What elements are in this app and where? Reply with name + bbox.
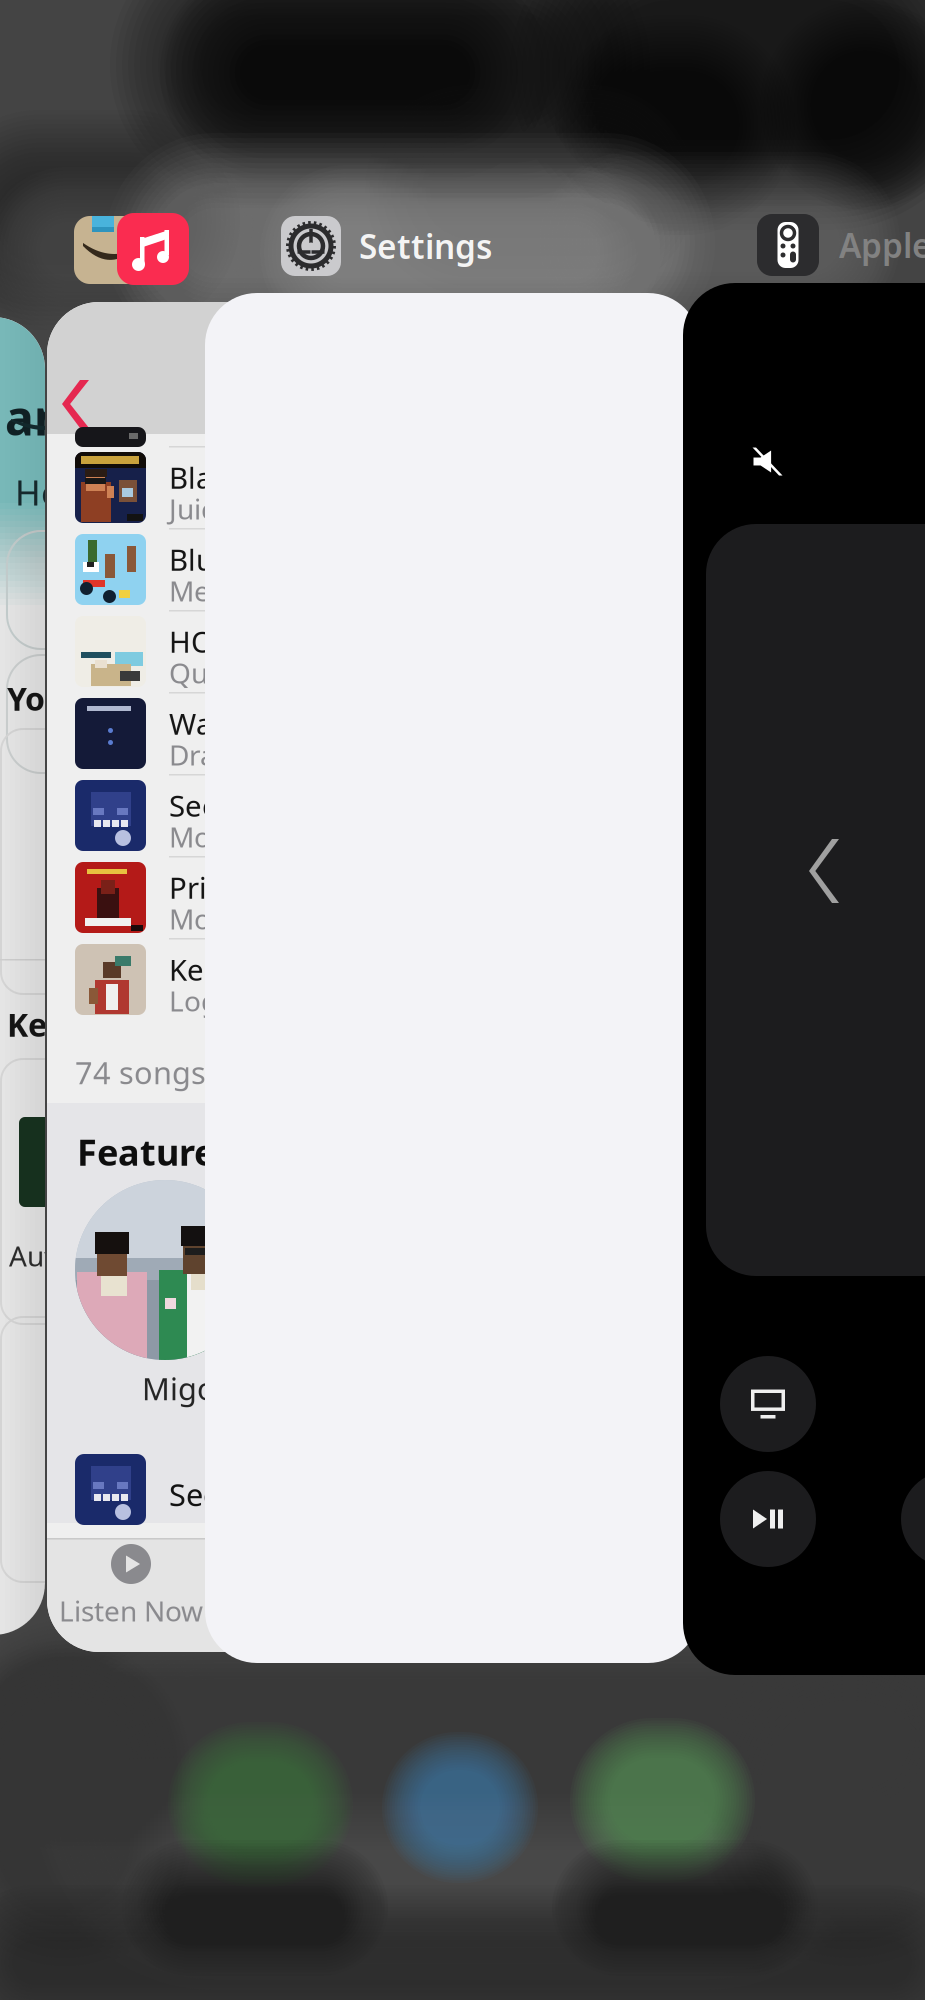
staticText: HOT <box>169 622 229 661</box>
button[interactable]: Back <box>793 823 855 919</box>
staticText: See <box>169 1474 220 1515</box>
button[interactable]: Apple TV Remote <box>683 283 925 1675</box>
staticText: See <box>169 786 219 825</box>
button[interactable]: Touch surface <box>706 524 925 1276</box>
button[interactable]: Amazon <box>0 317 45 1635</box>
button[interactable]: Listen Now <box>59 1544 203 1629</box>
staticText: Money <box>169 900 257 937</box>
button[interactable]: Play Pause <box>720 1471 816 1567</box>
button[interactable]: Music <box>117 213 189 285</box>
staticText: Listen Now <box>59 1592 203 1629</box>
staticText: Pride <box>169 868 242 907</box>
button[interactable]: Settings <box>281 216 492 276</box>
staticText: Blue Notes <box>169 540 321 579</box>
button[interactable]: Settings <box>205 293 700 1663</box>
staticText: Blaze Up <box>169 458 290 497</box>
staticText: Drake <box>169 736 247 773</box>
staticText: 74 songs, 3 hours <box>75 1052 333 1093</box>
button[interactable]: Music <box>47 302 467 1652</box>
button[interactable]: Apple TV Remote <box>757 214 925 276</box>
staticText: Migos <box>142 1368 231 1409</box>
staticText: Logic <box>169 982 238 1019</box>
staticText: Quavo <box>169 654 255 691</box>
staticText: Aut <box>9 1237 54 1274</box>
staticText: Settings <box>359 224 492 268</box>
staticText: Featured Artist <box>77 1128 349 1176</box>
staticText: He <box>15 469 61 515</box>
staticText: am <box>5 385 81 449</box>
staticText: Meek Mill <box>169 572 294 609</box>
staticText: Apple TV <box>839 223 925 267</box>
button[interactable]: Search <box>901 1471 925 1567</box>
staticText: Money <box>169 818 257 855</box>
button[interactable]: Mute <box>739 433 794 488</box>
staticText: Kea <box>169 950 220 989</box>
button[interactable]: TV <box>720 1356 816 1452</box>
staticText: War <box>169 704 224 743</box>
staticText: Kee <box>7 1003 66 1045</box>
staticText: You <box>7 677 66 719</box>
staticText: Juicy J <box>169 490 243 527</box>
button[interactable]: Back <box>52 370 99 438</box>
button[interactable]: Amazon <box>74 216 142 284</box>
